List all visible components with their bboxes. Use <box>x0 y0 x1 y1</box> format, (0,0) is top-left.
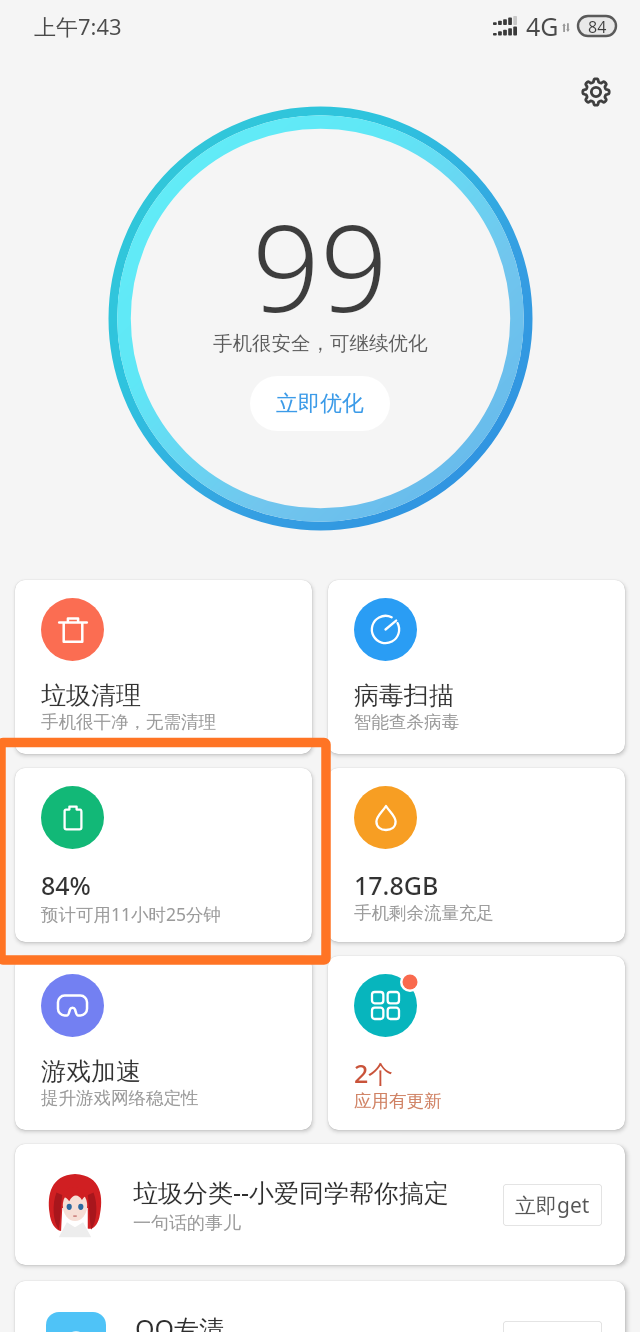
staticText: 垃圾清理 <box>41 680 141 711</box>
button[interactable]: 病毒扫描 <box>328 580 625 754</box>
staticText: 上午7:43 <box>34 11 122 41</box>
button[interactable]: QQ专清 <box>15 1281 625 1332</box>
staticText: 手机很安全，可继续优化 <box>213 331 428 356</box>
staticText: 游戏加速 <box>41 1056 141 1087</box>
button[interactable]: 84% <box>15 768 312 942</box>
staticText: 84% <box>41 868 91 902</box>
staticText: 一句话的事儿 <box>133 1212 241 1235</box>
staticText: 垃圾分类--小爱同学帮你搞定 <box>133 1175 450 1209</box>
staticText: QQ专清 <box>135 1311 225 1332</box>
button[interactable]: 游戏加速 <box>15 956 312 1130</box>
button[interactable]: 垃圾分类--小爱同学帮你搞定 <box>15 1144 625 1265</box>
staticText: 17.8GB <box>354 868 439 902</box>
button[interactable]: 垃圾清理 <box>15 580 312 754</box>
button[interactable]: 立即优化 <box>250 376 390 431</box>
staticText: 手机很干净，无需清理 <box>41 711 216 733</box>
staticText: 4G <box>526 9 559 43</box>
button[interactable]: 17.8GB <box>328 768 625 942</box>
staticText: 提升游戏网络稳定性 <box>41 1087 199 1109</box>
staticText: 立即get <box>515 1191 590 1220</box>
staticText: 智能查杀病毒 <box>354 711 459 733</box>
staticText: 99 <box>252 185 388 347</box>
button[interactable]: 设置 <box>570 66 622 118</box>
button[interactable]: 2个 <box>328 956 625 1130</box>
staticText: 预计可用11小时25分钟 <box>41 902 222 926</box>
staticText: 84 <box>588 16 607 36</box>
staticText: 病毒扫描 <box>354 680 454 711</box>
button[interactable]: 立即get <box>503 1321 602 1332</box>
staticText: 立即优化 <box>276 390 364 418</box>
staticText: 手机剩余流量充足 <box>354 902 494 924</box>
staticText: 应用有更新 <box>354 1090 442 1112</box>
staticText: 2个 <box>354 1056 394 1090</box>
button[interactable]: 立即get <box>503 1184 602 1226</box>
